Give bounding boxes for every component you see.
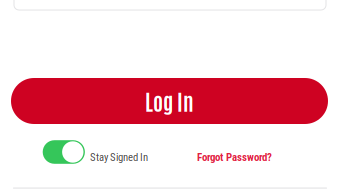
button[interactable]: Log In	[11, 78, 328, 124]
staticText: Stay Signed In	[90, 151, 148, 163]
button[interactable]: Forgot Password?	[197, 139, 275, 165]
staticText: Log In	[145, 87, 194, 115]
staticText: Forgot Password?	[197, 151, 272, 164]
button[interactable]: Stay Signed In	[42, 139, 148, 165]
